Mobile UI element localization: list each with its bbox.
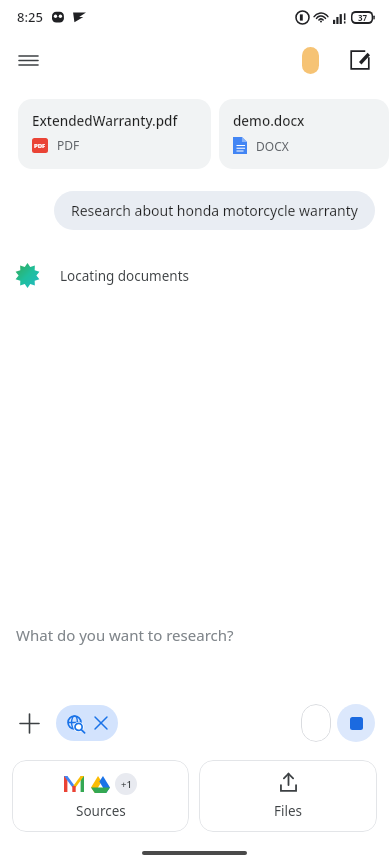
button[interactable]: Stop generating bbox=[337, 704, 375, 742]
button[interactable]: Account bbox=[302, 47, 319, 74]
button[interactable]: Add attachment bbox=[10, 704, 48, 742]
staticText: Sources bbox=[76, 802, 126, 820]
button[interactable]: ExtendedWarranty.pdf bbox=[18, 99, 211, 169]
button[interactable]: Voice input bbox=[301, 704, 331, 742]
staticText: Research about honda motorcycle warranty bbox=[71, 201, 358, 220]
button[interactable]: Files bbox=[199, 760, 377, 832]
button[interactable]: Research about honda motorcycle warranty bbox=[54, 191, 375, 230]
button[interactable]: +1 bbox=[12, 760, 189, 832]
button[interactable]: Open navigation menu bbox=[6, 38, 50, 82]
staticText: 8:25 bbox=[17, 8, 43, 26]
staticText: What do you want to research? bbox=[16, 625, 234, 645]
staticText: 37 bbox=[358, 12, 368, 23]
staticText: DOCX bbox=[256, 138, 289, 154]
staticText: Files bbox=[274, 802, 303, 820]
button[interactable]: Deep research active, tap to remove bbox=[56, 705, 118, 741]
staticText: ExtendedWarranty.pdf bbox=[32, 112, 178, 130]
staticText: PDF bbox=[34, 142, 46, 150]
staticText: Locating documents bbox=[60, 267, 190, 285]
staticText: +1 bbox=[121, 778, 132, 791]
button[interactable]: demo.docx bbox=[219, 99, 389, 169]
staticText: demo.docx bbox=[233, 112, 305, 130]
staticText: PDF bbox=[57, 137, 80, 153]
button[interactable]: New chat bbox=[339, 39, 381, 81]
